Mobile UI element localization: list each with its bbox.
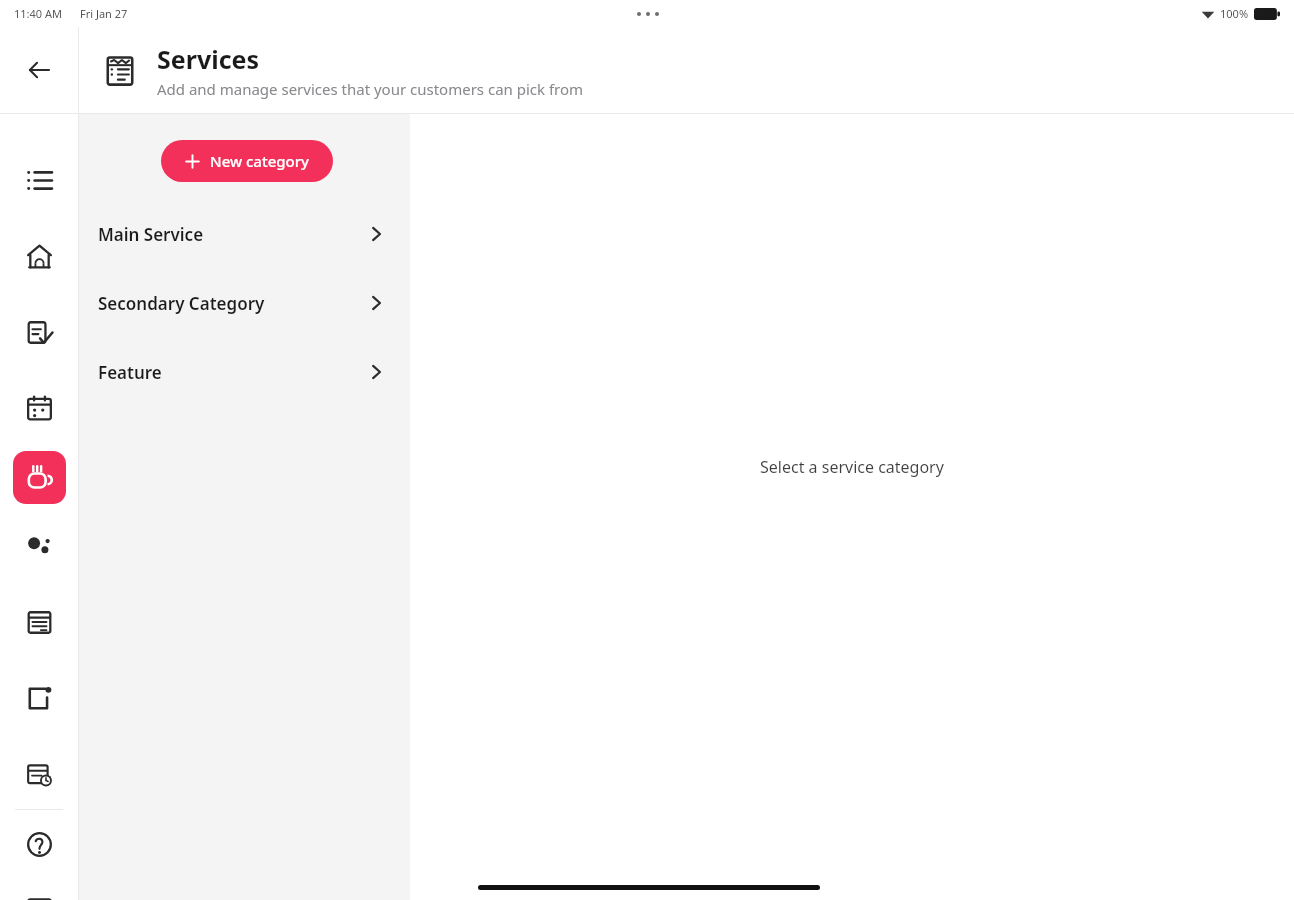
button[interactable]: Back [0, 27, 78, 113]
staticText: Services [157, 42, 260, 76]
button[interactable]: Orders list [13, 154, 66, 207]
button[interactable]: Secondary Category [79, 281, 410, 325]
staticText: 100% [1220, 6, 1249, 21]
button[interactable]: Services [13, 451, 66, 504]
button[interactable]: Inventory [13, 672, 66, 725]
button[interactable]: Feedback [13, 894, 66, 900]
button[interactable]: Main Service [79, 212, 410, 256]
button[interactable]: Calendar [13, 382, 66, 435]
button[interactable]: Home [13, 230, 66, 283]
button[interactable]: Feature [79, 350, 410, 394]
staticText: 11:40 AM [14, 6, 62, 21]
button[interactable]: Schedule [13, 596, 66, 649]
button[interactable]: Insights [13, 520, 66, 573]
staticText: Main Service [98, 223, 367, 246]
button[interactable]: Services [97, 48, 143, 94]
staticText: Add and manage services that your custom… [157, 79, 584, 99]
staticText: New category [210, 151, 309, 171]
staticText: Select a service category [760, 456, 944, 478]
button[interactable]: New category [161, 140, 333, 182]
staticText: Feature [98, 361, 367, 384]
staticText: Fri Jan 27 [80, 6, 128, 21]
staticText: Secondary Category [98, 292, 367, 315]
button[interactable]: Help [13, 818, 66, 871]
button[interactable]: Tasks [13, 306, 66, 359]
button[interactable]: Reports [13, 748, 66, 801]
